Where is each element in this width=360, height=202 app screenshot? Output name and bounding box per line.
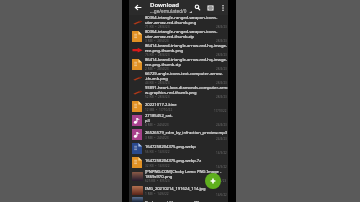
staticText: 76 KB • 28/4/23 — [145, 53, 170, 57]
button[interactable]: 1647258204375.png.webp.7z — [129, 155, 228, 169]
button[interactable]: More options — [217, 0, 228, 15]
staticText: 26526579_edm_by_infraction_preview.mp3 — [145, 130, 228, 136]
button[interactable]: 66729-angle-icons-text-computer-arrow-re… — [129, 71, 228, 85]
staticText: 625 KB • 8/5/23 — [145, 179, 170, 183]
staticText: 80364-triangle-ranged-weapon-icons-comp — [145, 15, 228, 21]
staticText: 52 KB • 28/4/23 — [145, 95, 170, 99]
staticText: 93891-heart-love-diamonds-computer-arro — [145, 85, 228, 91]
button[interactable]: 1647258204375.png.webp — [129, 141, 228, 155]
button[interactable]: Change view layout — [204, 0, 217, 15]
staticText: 3 MB • 24/4/23 — [145, 136, 169, 140]
staticText: uter-arrow-red-thumb.png — [145, 20, 197, 26]
staticText: ...ge/emulated/0 — [150, 8, 187, 14]
staticText: ree-png-thumb.zip — [145, 62, 181, 68]
staticText: ree-png-thumb.png — [145, 48, 183, 54]
button[interactable]: 27185452_cat-travel_by_infraction_previe… — [129, 113, 228, 127]
button[interactable]: 80364-triangle-ranged-weapon-icons-comp — [129, 29, 228, 43]
staticText: IMG_20210214_191624_114.jpg — [145, 186, 206, 192]
staticText: 1647258204375.png.webp — [145, 144, 196, 150]
staticText: Background filemanager CD.png — [145, 200, 208, 202]
staticText: p3 — [145, 118, 150, 124]
staticText: 4 MB • 24/4/23 — [145, 123, 169, 127]
button[interactable]: Background filemanager CD.png — [129, 197, 228, 202]
staticText: 80364-triangle-ranged-weapon-icons-comp — [145, 29, 228, 35]
staticText: 24/4/23 — [216, 137, 227, 141]
button[interactable]: 86414-brand-triangle-arrow-red-hq-image-… — [129, 43, 228, 57]
staticText: 71 KB • 28/4/23 — [145, 25, 170, 29]
staticText: 28/4/23 — [216, 95, 227, 99]
staticText: 12 MB • 17/10/22 — [145, 108, 173, 112]
staticText: 17/10/22 — [214, 109, 227, 113]
staticText: 1869x970.png — [145, 174, 173, 180]
staticText: 20221017-2.kine — [145, 102, 177, 108]
staticText: 2 MB • 28/4/23 — [145, 67, 169, 71]
staticText: 8/5/23 — [217, 179, 227, 183]
staticText: 28/4/23 — [216, 25, 227, 29]
staticText: Download — [150, 1, 179, 9]
staticText: 28/4/23 — [216, 81, 227, 85]
button[interactable]: [PNPNG.COM]Choky Lemo PNG Image - — [129, 169, 228, 183]
staticText: 14/3/22 — [216, 165, 227, 169]
staticText: 14/3/22 — [216, 151, 227, 155]
button[interactable]: Add — [205, 173, 221, 189]
staticText: 1 MB • 14/6/22 — [145, 192, 169, 196]
staticText: 24/4/23 — [216, 123, 227, 127]
staticText: 1647258204375.png.webp.7z — [145, 158, 202, 164]
staticText: 66729-angle-icons-text-computer-arrow-re… — [145, 71, 228, 77]
staticText: uter-arrow-red-thumb.zip — [145, 34, 195, 40]
staticText: 28/4/23 — [216, 53, 227, 57]
staticText: 14/6/22 — [216, 193, 227, 197]
staticText: 32 KB • 14/3/22 — [145, 164, 170, 168]
staticText: 44 KB • 28/4/23 — [145, 81, 170, 85]
staticText: w-graphics-red-thumb.png — [145, 90, 197, 96]
button[interactable]: Search — [191, 0, 204, 15]
button[interactable]: Back — [131, 0, 144, 15]
staticText: -thumb.png — [145, 76, 168, 82]
button[interactable]: 86414-brand-triangle-arrow-red-hq-image-… — [129, 57, 228, 71]
staticText: 3 MB • 28/4/23 — [145, 39, 169, 43]
button[interactable]: 26526579_edm_by_infraction_preview.mp3 — [129, 127, 228, 141]
button[interactable]: 80364-triangle-ranged-weapon-icons-comp — [129, 15, 228, 29]
staticText: 56 KB • 14/3/22 — [145, 150, 170, 154]
staticText: 86414-brand-triangle-arrow-red-hq-image-… — [145, 57, 228, 63]
staticText: 86414-brand-triangle-arrow-red-hq-image-… — [145, 43, 228, 49]
staticText: [PNPNG.COM]Choky Lemo PNG Image - — [145, 169, 222, 175]
button[interactable]: 93891-heart-love-diamonds-computer-arro — [129, 85, 228, 99]
button[interactable]: 20221017-2.kine — [129, 99, 228, 113]
staticText: 27185452_cat-travel_by_infraction_previe… — [145, 113, 228, 119]
staticText: 28/4/23 — [216, 39, 227, 43]
staticText: 28/4/23 — [216, 67, 227, 71]
button[interactable]: IMG_20210214_191624_114.jpg — [129, 183, 228, 197]
